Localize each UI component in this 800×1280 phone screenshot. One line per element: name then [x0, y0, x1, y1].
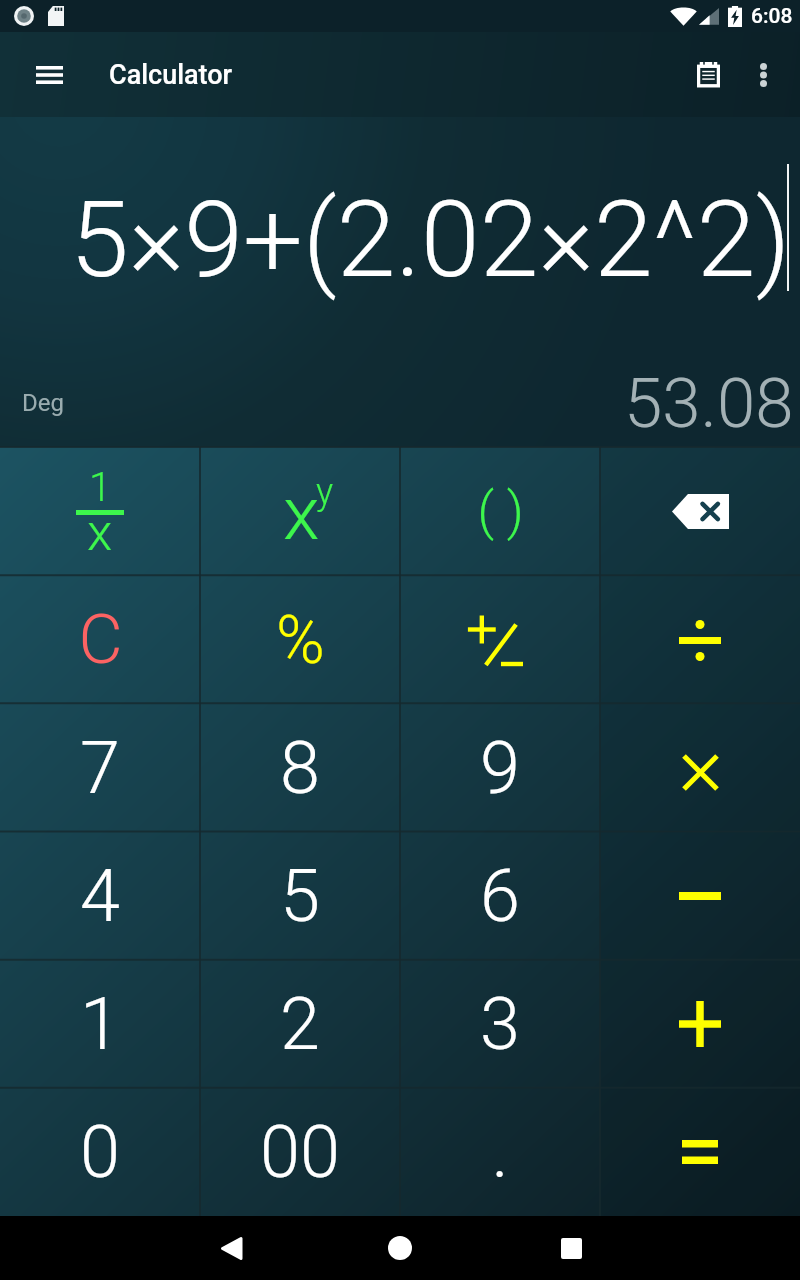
staticText: 3	[480, 982, 520, 1066]
staticText: y	[316, 471, 334, 513]
button[interactable]: Reciprocal	[0, 447, 200, 576]
staticText: 4	[80, 854, 120, 938]
button[interactable]: 3	[400, 960, 600, 1088]
button[interactable]: 5	[200, 832, 400, 960]
button[interactable]: Open navigation menu	[0, 32, 98, 117]
button[interactable]: 8	[200, 704, 400, 832]
button[interactable]: Equals	[600, 1088, 800, 1216]
button[interactable]: 00	[200, 1088, 400, 1216]
staticText: %	[276, 602, 325, 679]
button[interactable]: Home	[355, 1216, 445, 1280]
staticText: 0	[80, 1110, 120, 1194]
staticText: 2	[280, 982, 320, 1066]
button[interactable]: Multiply	[600, 704, 800, 832]
staticText: ( )	[477, 481, 524, 542]
staticText: x	[87, 502, 113, 563]
staticText: 6:08	[751, 4, 793, 29]
staticText: 5	[280, 854, 320, 938]
staticText: x	[283, 469, 320, 545]
button[interactable]: Subtract	[600, 832, 800, 960]
button[interactable]: ( )	[400, 447, 600, 576]
button[interactable]: Backspace	[600, 447, 800, 576]
button[interactable]: C	[0, 576, 200, 704]
button[interactable]: 6	[400, 832, 600, 960]
staticText: 00	[260, 1110, 340, 1194]
staticText: .	[491, 1110, 509, 1194]
staticText: 9	[480, 726, 520, 810]
button[interactable]: %	[200, 576, 400, 704]
button[interactable]: 9	[400, 704, 600, 832]
button[interactable]: .	[400, 1088, 600, 1216]
button[interactable]: Add	[600, 960, 800, 1088]
button[interactable]: Power	[200, 447, 400, 576]
staticText: C	[78, 600, 123, 680]
button[interactable]: More options	[738, 32, 788, 117]
button[interactable]: Divide	[600, 576, 800, 704]
staticText: Deg	[22, 389, 64, 417]
button[interactable]: Toggle sign	[400, 576, 600, 704]
button[interactable]: 7	[0, 704, 200, 832]
button[interactable]: Recent apps	[526, 1216, 616, 1280]
staticText: 1	[80, 982, 120, 1066]
staticText: 5×9+(2.02×2^2)	[70, 178, 791, 302]
button[interactable]: History	[678, 32, 738, 117]
staticText: Calculator	[109, 59, 233, 91]
button[interactable]: 4	[0, 832, 200, 960]
staticText: 7	[80, 726, 120, 810]
button[interactable]: 0	[0, 1088, 200, 1216]
staticText: 6	[480, 854, 520, 938]
button[interactable]: 1	[0, 960, 200, 1088]
staticText: 8	[280, 726, 320, 810]
staticText: 53.08	[624, 363, 794, 444]
staticText: 1	[89, 464, 112, 511]
button[interactable]: 2	[200, 960, 400, 1088]
button[interactable]: Back	[186, 1216, 276, 1280]
